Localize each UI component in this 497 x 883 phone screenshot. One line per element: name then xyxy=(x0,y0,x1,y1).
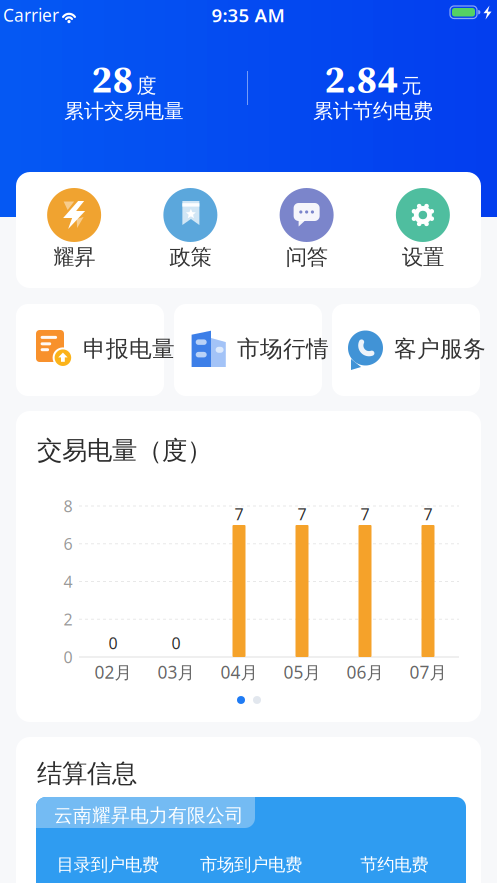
button[interactable]: 客户服务 xyxy=(332,304,480,396)
button[interactable]: 问答 xyxy=(248,188,365,270)
staticText: 28 xyxy=(91,52,133,105)
staticText: 0 xyxy=(171,632,180,654)
staticText: 结算信息 xyxy=(37,758,137,789)
staticText: 0 xyxy=(63,646,72,668)
staticText: 2 xyxy=(63,609,72,630)
staticText: 03月 xyxy=(157,660,194,683)
staticText: 6 xyxy=(63,533,72,554)
staticText: 7 xyxy=(234,503,243,525)
staticText: 云南耀昇电力有限公司 xyxy=(54,804,244,827)
staticText: 9:35 AM xyxy=(211,3,284,27)
staticText: 交易电量（度） xyxy=(37,435,212,466)
staticText: 2.84 xyxy=(324,52,398,105)
staticText: 问答 xyxy=(286,244,328,270)
staticText: 度 xyxy=(136,74,156,98)
staticText: 客户服务 xyxy=(394,335,486,363)
staticText: 申报电量 xyxy=(83,335,175,363)
staticText: 累计交易电量 xyxy=(64,99,184,123)
staticText: 8 xyxy=(63,495,72,517)
staticText: 04月 xyxy=(220,660,257,683)
staticText: 元 xyxy=(401,74,421,98)
staticText: 02月 xyxy=(94,660,131,683)
staticText: 7 xyxy=(360,503,369,525)
button[interactable]: 设置 xyxy=(365,188,481,270)
staticText: 耀昇 xyxy=(53,244,95,270)
button[interactable]: 政策 xyxy=(132,188,248,270)
staticText: 4 xyxy=(63,571,72,592)
staticText: 累计节约电费 xyxy=(313,99,433,123)
staticText: 0 xyxy=(108,632,117,654)
button[interactable]: 申报电量 xyxy=(16,304,164,396)
staticText: 07月 xyxy=(409,660,446,683)
button[interactable]: 耀昇 xyxy=(16,188,132,270)
staticText: 设置 xyxy=(402,244,444,270)
staticText: 7 xyxy=(297,503,306,525)
staticText: 05月 xyxy=(283,660,320,683)
staticText: 市场行情 xyxy=(237,335,329,363)
staticText: 政策 xyxy=(169,244,211,270)
staticText: Carrier xyxy=(3,3,59,26)
staticText: 市场到户电费 xyxy=(200,854,302,875)
button[interactable]: 云南耀昇电力有限公司 xyxy=(36,797,466,883)
staticText: 节约电费 xyxy=(360,854,428,875)
staticText: 06月 xyxy=(346,660,383,683)
staticText: 7 xyxy=(423,503,432,525)
staticText: 目录到户电费 xyxy=(57,854,159,875)
button[interactable]: 市场行情 xyxy=(174,304,322,396)
